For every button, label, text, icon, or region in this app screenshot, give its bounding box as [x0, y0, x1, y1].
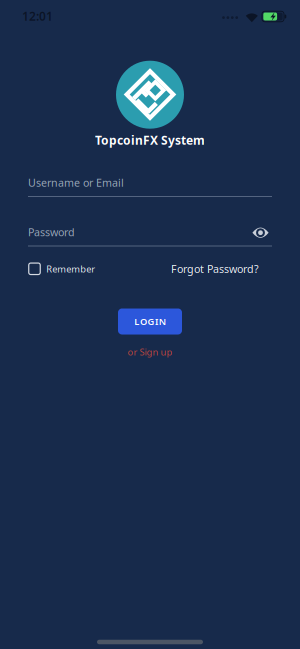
staticText: LOGIN	[134, 315, 166, 328]
button[interactable]: LOGIN	[118, 308, 182, 334]
staticText: Remember	[46, 263, 95, 275]
staticText: Password	[28, 225, 75, 239]
button[interactable]: Username or Email	[28, 174, 272, 204]
button[interactable]	[247, 222, 273, 244]
staticText: Username or Email	[28, 175, 124, 190]
button[interactable]: Password	[28, 224, 272, 254]
staticText: TopcoinFX System	[95, 132, 205, 148]
button[interactable]: or Sign up	[127, 346, 172, 358]
button[interactable]: Forgot Password?	[171, 262, 259, 276]
button[interactable]: Remember	[29, 263, 95, 275]
staticText: 12:01	[22, 8, 53, 24]
staticText: or Sign up	[127, 346, 172, 358]
staticText: Forgot Password?	[171, 262, 259, 276]
